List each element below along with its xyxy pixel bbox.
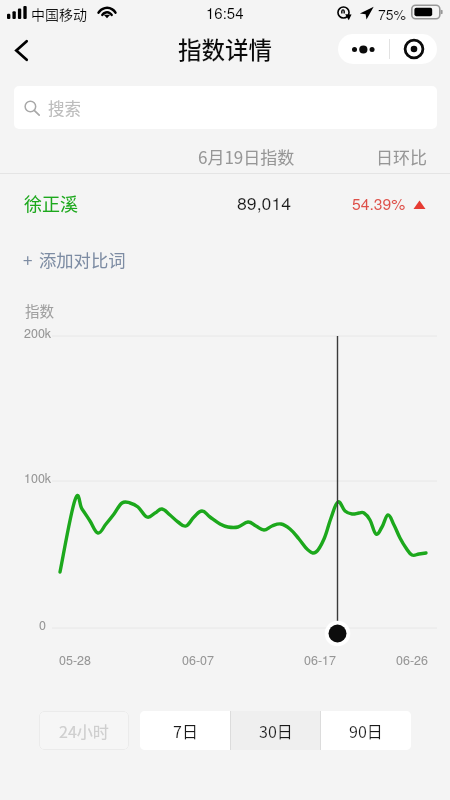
staticText: 06-17 xyxy=(304,651,336,669)
staticText: 日环比 xyxy=(376,144,427,169)
staticText: 添加对比词 xyxy=(39,247,126,272)
staticText: 54.39% xyxy=(352,192,406,214)
staticText: 中国移动 xyxy=(31,4,87,24)
staticText: + xyxy=(23,247,33,272)
staticText: 30日 xyxy=(259,719,293,742)
button[interactable]: 搜索 xyxy=(14,86,437,129)
staticText: 指数详情 xyxy=(178,32,272,66)
staticText: 05-28 xyxy=(59,651,91,669)
button[interactable]: 7日 xyxy=(140,711,230,750)
staticText: 89,014 xyxy=(237,190,292,215)
staticText: 24小时 xyxy=(59,719,109,742)
staticText: 徐正溪 xyxy=(24,190,78,216)
staticText: 06-07 xyxy=(182,651,214,669)
staticText: 6月19日指数 xyxy=(198,144,295,169)
staticText: 75% xyxy=(378,4,407,24)
staticText: 0 xyxy=(39,616,46,634)
staticText: 100k xyxy=(24,469,52,487)
button[interactable]: 30日 xyxy=(231,711,320,750)
button[interactable]: More options xyxy=(338,34,389,64)
button[interactable] xyxy=(0,174,450,232)
staticText: 7日 xyxy=(173,719,198,742)
staticText: 16:54 xyxy=(206,2,244,23)
staticText: 搜索 xyxy=(48,96,81,120)
staticText: 指数 xyxy=(25,300,54,321)
button[interactable]: + xyxy=(0,232,450,280)
staticText: 90日 xyxy=(349,719,383,742)
button[interactable]: 24小时 xyxy=(39,711,129,750)
button[interactable]: 90日 xyxy=(321,711,411,750)
staticText: 06-26 xyxy=(396,651,428,669)
button[interactable]: Back xyxy=(0,26,42,74)
button[interactable]: Close mini program xyxy=(390,34,437,64)
staticText: 200k xyxy=(24,324,52,342)
